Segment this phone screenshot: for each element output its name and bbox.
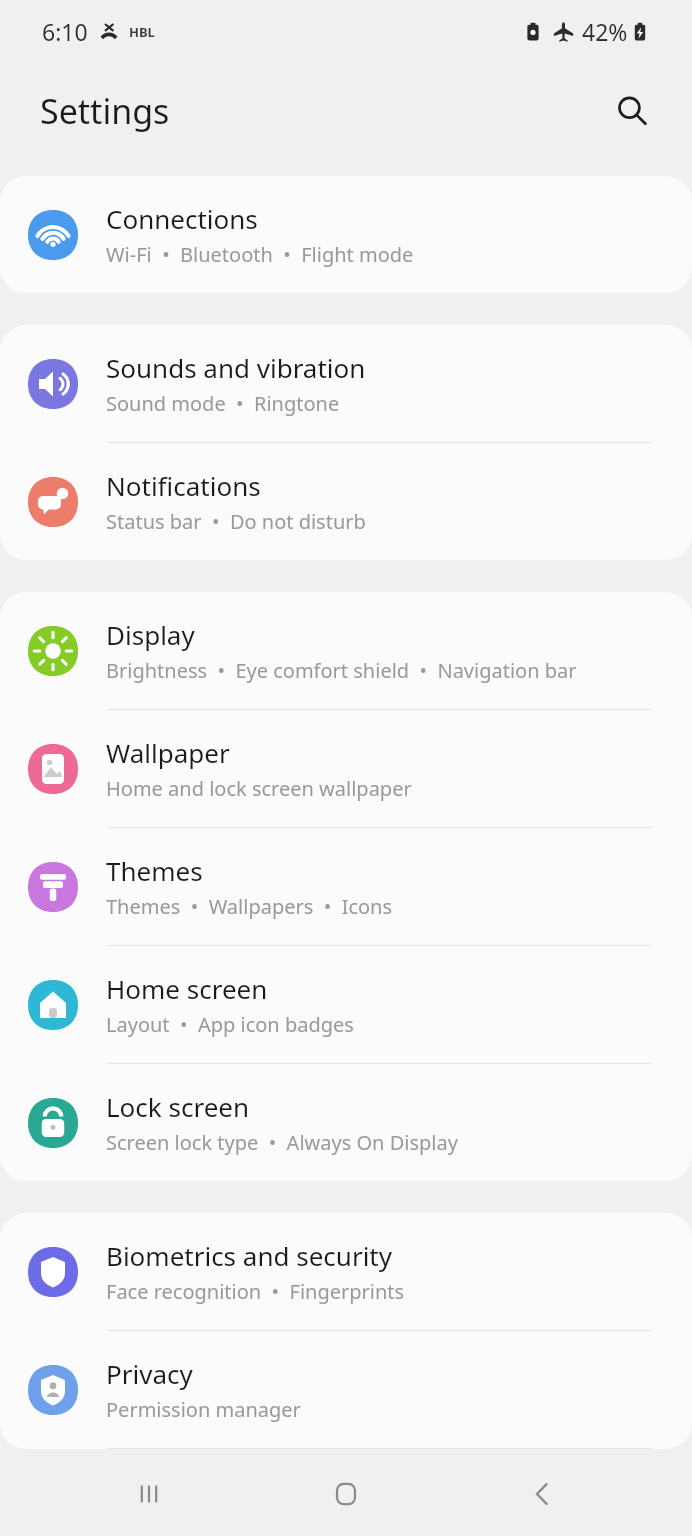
staticText: Themes • Wallpapers • Icons (106, 893, 393, 920)
staticText: Themes (106, 853, 203, 888)
button[interactable]: Display (0, 592, 692, 709)
staticText: Wallpaper (106, 735, 230, 770)
staticText: Permission manager (106, 1396, 301, 1423)
staticText: Home and lock screen wallpaper (106, 775, 412, 802)
staticText: Face recognition • Fingerprints (106, 1278, 405, 1305)
staticText: Status bar • Do not disturb (106, 508, 366, 535)
button[interactable]: Back (495, 1452, 591, 1536)
staticText: Home screen (106, 971, 268, 1006)
staticText: Sounds and vibration (106, 350, 366, 385)
button[interactable]: Search (604, 83, 660, 139)
button[interactable]: Notifications (0, 443, 692, 560)
button[interactable]: Biometrics and security (0, 1213, 692, 1330)
staticText: Settings (40, 88, 170, 134)
staticText: Brightness • Eye comfort shield • Naviga… (106, 657, 577, 684)
staticText: Screen lock type • Always On Display (106, 1129, 458, 1156)
staticText: Sound mode • Ringtone (106, 390, 340, 417)
staticText: Lock screen (106, 1089, 250, 1124)
staticText: Layout • App icon badges (106, 1011, 354, 1038)
button[interactable]: Sounds and vibration (0, 325, 692, 442)
button[interactable]: Privacy (0, 1331, 692, 1448)
button[interactable]: Connections (0, 176, 692, 293)
staticText: Biometrics and security (106, 1238, 393, 1273)
button[interactable]: Wallpaper (0, 710, 692, 827)
button[interactable]: Home screen (0, 946, 692, 1063)
button[interactable]: Lock screen (0, 1064, 692, 1181)
staticText: 42% (582, 16, 628, 47)
button[interactable]: Recent apps (101, 1452, 197, 1536)
staticText: Wi-Fi • Bluetooth • Flight mode (106, 241, 414, 268)
button[interactable]: Themes (0, 828, 692, 945)
staticText: Privacy (106, 1356, 193, 1391)
button[interactable]: Home (298, 1452, 394, 1536)
staticText: 6:10 (42, 16, 88, 47)
staticText: Display (106, 617, 195, 652)
staticText: Connections (106, 201, 258, 236)
staticText: HBL (129, 23, 155, 41)
staticText: Notifications (106, 468, 261, 503)
